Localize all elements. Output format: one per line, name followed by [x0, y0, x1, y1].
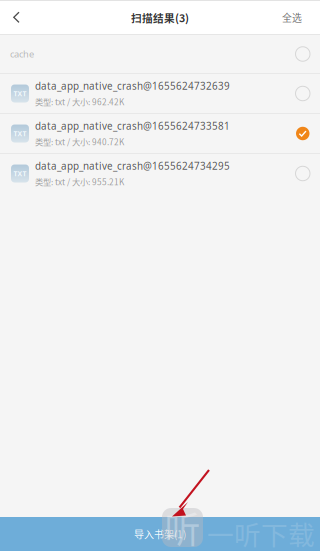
- staticText: data_app_native_crash@1655624732639: [35, 79, 230, 93]
- staticText: 听: [164, 501, 200, 551]
- staticText: 全选: [282, 10, 302, 25]
- button[interactable]: 全选: [282, 1, 320, 34]
- staticText: data_app_native_crash@1655624733581: [35, 119, 230, 133]
- staticText: 扫描结果(3): [131, 10, 189, 25]
- staticText: 类型: txt / 大小: 962.42K: [35, 96, 124, 108]
- staticText: cache: [10, 48, 34, 60]
- staticText: 类型: txt / 大小: 940.72K: [35, 136, 124, 148]
- button[interactable]: Back: [0, 1, 32, 34]
- staticText: TXT: [13, 89, 26, 98]
- staticText: 一听下载: [207, 514, 315, 551]
- button[interactable]: 导入书架(1): [0, 517, 320, 551]
- staticText: 导入书架(1): [134, 527, 186, 541]
- staticText: TXT: [13, 169, 26, 178]
- staticText: 类型: txt / 大小: 955.21K: [35, 176, 124, 188]
- button[interactable]: TXT: [0, 153, 320, 193]
- button[interactable]: cache: [0, 35, 320, 73]
- staticText: TXT: [13, 129, 26, 138]
- button[interactable]: TXT: [0, 113, 320, 153]
- staticText: data_app_native_crash@1655624734295: [35, 159, 230, 173]
- button[interactable]: TXT: [0, 73, 320, 113]
